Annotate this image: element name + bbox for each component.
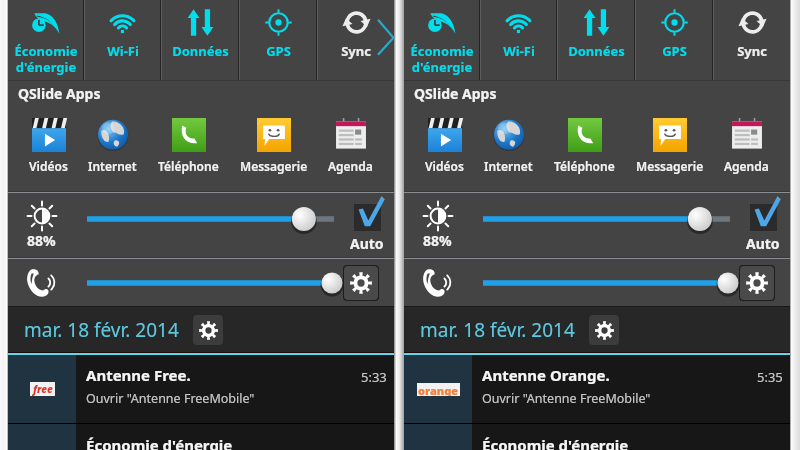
staticText: free <box>33 382 53 396</box>
button[interactable]: free <box>8 355 394 423</box>
button[interactable]: Économie d'énergie <box>404 424 790 450</box>
button[interactable]: Volume slider <box>75 259 343 306</box>
staticText: Données <box>568 42 625 60</box>
button[interactable]: Téléphone <box>554 118 615 174</box>
staticText: Agenda <box>328 158 373 174</box>
button[interactable]: Sound settings <box>740 266 774 300</box>
button[interactable]: Sync <box>318 0 394 80</box>
staticText: Internet <box>88 158 137 174</box>
staticText: Économie d'énergie <box>14 42 78 75</box>
button[interactable]: GPS <box>240 0 316 80</box>
staticText: Messagerie <box>636 158 704 174</box>
button[interactable]: Économie d'énergie <box>8 0 83 80</box>
staticText: Économie d'énergie <box>482 435 629 450</box>
button[interactable]: Téléphone <box>158 118 219 174</box>
staticText: Vidéos <box>425 158 464 174</box>
staticText: GPS <box>266 42 291 60</box>
staticText: 88% <box>423 231 452 250</box>
staticText: 88% <box>27 231 56 250</box>
button[interactable]: Vidéos <box>29 118 68 174</box>
staticText: Internet <box>484 158 533 174</box>
button[interactable]: Wi-Fi <box>85 0 160 80</box>
button[interactable]: Ringer volume <box>8 259 75 306</box>
staticText: mar. 18 févr. 2014 <box>420 317 575 343</box>
button[interactable]: Données <box>558 0 634 80</box>
staticText: QSlide Apps <box>414 84 497 103</box>
button[interactable]: Messagerie <box>240 118 308 174</box>
button[interactable]: Agenda <box>724 118 769 174</box>
staticText: Messagerie <box>240 158 308 174</box>
button[interactable]: Économie d'énergie <box>404 0 479 80</box>
button[interactable]: Wi-Fi <box>481 0 556 80</box>
staticText: Sync <box>737 42 767 60</box>
staticText: Données <box>172 42 229 60</box>
staticText: Vidéos <box>29 158 68 174</box>
button[interactable]: Settings <box>193 315 223 345</box>
other: More quick settings <box>8 0 394 80</box>
staticText: mar. 18 févr. 2014 <box>24 317 179 343</box>
staticText: Auto <box>350 234 384 253</box>
button[interactable]: Agenda <box>328 118 373 174</box>
staticText: 5:35 <box>757 368 783 386</box>
button[interactable]: Brightness slider <box>75 193 340 257</box>
button[interactable]: Auto <box>736 193 790 257</box>
staticText: QSlide Apps <box>18 84 101 103</box>
staticText: Auto <box>746 234 780 253</box>
staticText: Ouvrir "Antenne FreeMobile" <box>86 390 255 407</box>
staticText: orange <box>418 383 459 396</box>
staticText: Économie d'énergie <box>410 42 474 75</box>
button[interactable]: Ringer volume <box>404 259 471 306</box>
staticText: Agenda <box>724 158 769 174</box>
button[interactable]: Internet <box>484 118 533 174</box>
button[interactable]: Messagerie <box>636 118 704 174</box>
button[interactable]: Données <box>162 0 238 80</box>
button[interactable]: Vidéos <box>425 118 464 174</box>
staticText: Ouvrir "Antenne FreeMobile" <box>482 390 651 407</box>
button[interactable]: orange <box>404 355 790 423</box>
button[interactable]: Brightness 88 percent <box>404 193 471 257</box>
button[interactable]: Sound settings <box>344 266 378 300</box>
staticText: 5:33 <box>361 368 387 386</box>
staticText: Économie d'énergie <box>86 435 233 450</box>
button[interactable]: GPS <box>636 0 712 80</box>
button[interactable]: Volume slider <box>471 259 739 306</box>
staticText: Téléphone <box>554 158 615 174</box>
staticText: Wi-Fi <box>107 42 139 60</box>
button[interactable]: Économie d'énergie <box>8 424 394 450</box>
button[interactable]: Settings <box>589 315 619 345</box>
button[interactable]: Internet <box>88 118 137 174</box>
button[interactable]: Brightness slider <box>471 193 736 257</box>
staticText: Antenne Free. <box>86 365 191 385</box>
staticText: Antenne Orange. <box>482 365 610 385</box>
staticText: Téléphone <box>158 158 219 174</box>
staticText: Sync <box>341 42 371 60</box>
staticText: GPS <box>662 42 687 60</box>
staticText: Wi-Fi <box>503 42 535 60</box>
button[interactable]: Brightness 88 percent <box>8 193 75 257</box>
button[interactable]: Auto <box>340 193 394 257</box>
button[interactable]: Sync <box>714 0 790 80</box>
